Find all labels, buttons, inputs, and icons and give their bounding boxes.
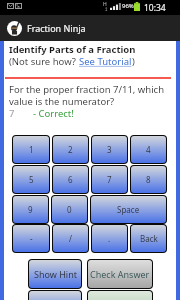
button[interactable]: 2 [53,136,88,163]
staticText: 5 [29,174,34,185]
staticText: 8 [146,174,151,185]
button[interactable]: 6 [53,166,88,193]
button[interactable]: Next Question [88,291,152,300]
staticText: ↕ [104,6,109,12]
button[interactable]: 0 [52,196,87,223]
staticText: . [108,233,111,244]
staticText: ) [132,55,135,68]
button[interactable]: See Tutorial [79,55,132,68]
button[interactable]: Main Menu [29,291,81,300]
staticText: 10:34 [144,2,166,14]
staticText: For the proper fraction 7/11, which [9,83,165,96]
button[interactable]: Space [91,196,166,223]
button[interactable]: / [53,225,88,252]
staticText: - [30,233,33,244]
staticText: - Correct! [33,107,74,120]
staticText: / [69,233,72,244]
staticText: 6 [68,174,73,185]
staticText: 0 [67,204,72,215]
staticText: Back [140,233,158,244]
staticText: 7 [107,174,112,185]
button[interactable]: Show Hint [29,260,81,288]
staticText: (Not sure how? [9,55,79,68]
staticText: Space [117,204,140,215]
staticText: 3 [107,144,112,155]
staticText: Check Answer [90,268,150,280]
button[interactable]: - [13,225,49,252]
staticText: 96% [122,2,134,10]
button[interactable]: 9 [13,196,48,223]
button[interactable]: 1 [13,136,49,163]
staticText: 1 [29,144,34,155]
button[interactable]: . [92,225,127,252]
staticText: value is the numerator? [9,95,115,108]
button[interactable]: 3 [92,136,127,163]
staticText: Fraction Ninja [27,22,86,34]
button[interactable]: 7 [92,166,127,193]
button[interactable]: Back [131,225,166,252]
staticText: Show Hint [34,268,77,280]
button[interactable]: 4 [131,136,166,163]
staticText: H [103,1,107,8]
staticText: Identify Parts of a Fraction [9,43,136,56]
staticText: 2 [68,144,73,155]
staticText: 4 [146,144,151,155]
staticText: 9 [28,204,33,215]
button[interactable]: 5 [13,166,49,193]
staticText: 7 [9,107,15,120]
button[interactable]: 8 [131,166,166,193]
button[interactable]: Check Answer [88,260,152,288]
